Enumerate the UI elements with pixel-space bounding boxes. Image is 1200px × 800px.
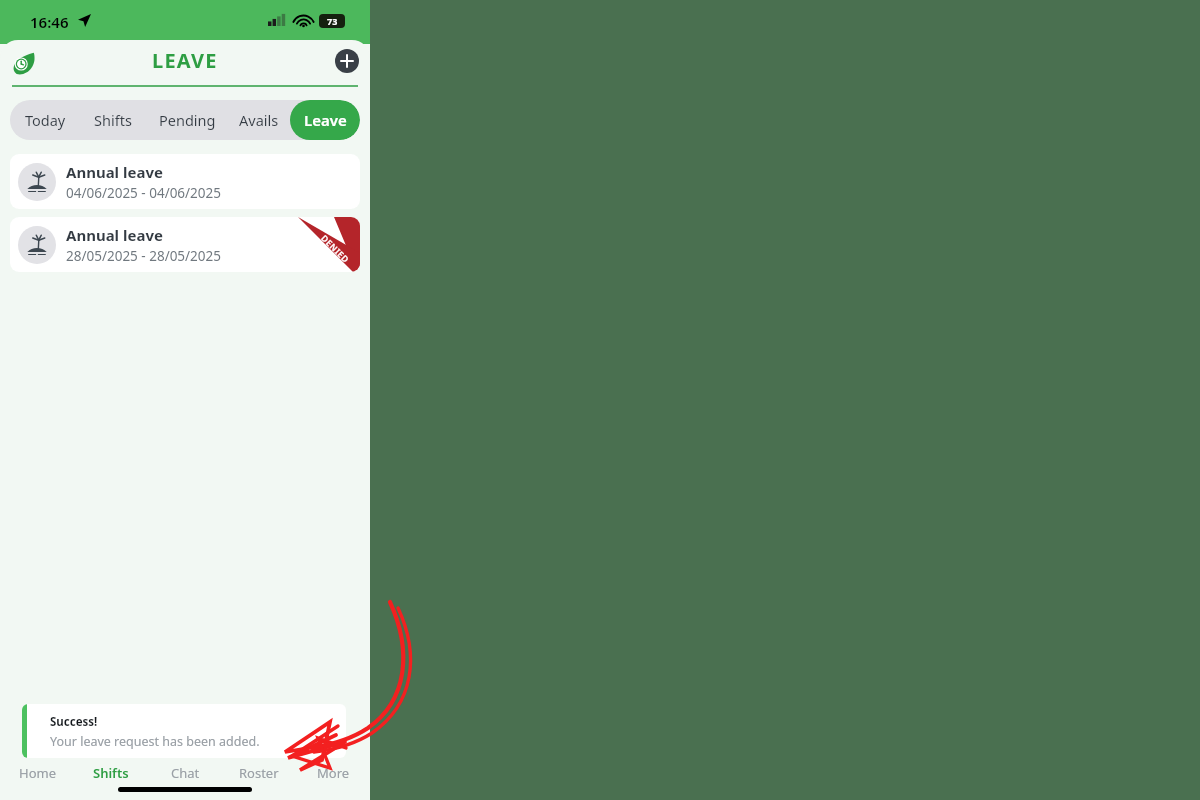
button[interactable]: Today — [10, 100, 80, 140]
staticText: LEAVE — [152, 47, 218, 74]
staticText: Annual leave — [66, 225, 163, 245]
staticText: 04/06/2025 - 04/06/2025 — [66, 184, 222, 202]
button[interactable]: Chat — [148, 738, 222, 782]
button[interactable]: Shifts — [74, 738, 148, 782]
staticText: Pending — [159, 110, 216, 130]
button[interactable]: Leave — [290, 100, 360, 140]
button[interactable]: Annual leave — [10, 154, 360, 209]
staticText: Chat — [171, 764, 200, 782]
staticText: 16:46 — [30, 12, 69, 32]
button[interactable]: Shifts — [80, 100, 146, 140]
staticText: Home — [19, 764, 56, 782]
staticText: More — [317, 764, 350, 782]
staticText: Avails — [239, 110, 279, 130]
button[interactable]: Pending — [146, 100, 228, 140]
button[interactable]: Success! — [22, 704, 346, 758]
staticText: Annual leave — [66, 162, 163, 182]
button[interactable]: Annual leave — [10, 217, 360, 272]
staticText: Today — [25, 110, 66, 130]
staticText: 73 — [327, 15, 338, 27]
staticText: Roster — [239, 764, 279, 782]
staticText: Leave — [304, 110, 347, 130]
button[interactable]: More — [296, 738, 370, 782]
staticText: 28/05/2025 - 28/05/2025 — [66, 247, 222, 265]
button[interactable]: Add leave request — [335, 49, 359, 73]
staticText: Your leave request has been added. — [50, 733, 260, 750]
button[interactable]: App logo — [10, 50, 38, 78]
staticText: Shifts — [94, 110, 132, 130]
button[interactable]: Roster — [222, 738, 296, 782]
button[interactable]: Home — [0, 738, 74, 782]
staticText: Success! — [50, 714, 98, 730]
button[interactable]: Avails — [228, 100, 290, 140]
staticText: DENIED — [318, 232, 352, 266]
staticText: Shifts — [93, 764, 129, 782]
